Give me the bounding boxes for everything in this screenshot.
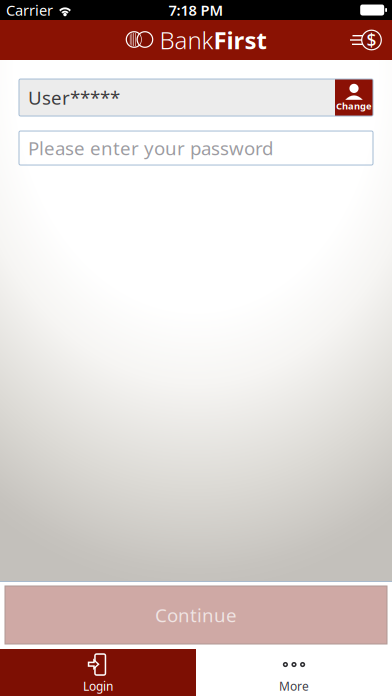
staticText: Carrier	[6, 0, 53, 20]
staticText: User*****	[28, 85, 120, 110]
staticText: Continue	[155, 603, 237, 627]
button[interactable]: Login	[0, 649, 196, 696]
button[interactable]: Quick Pay	[342, 20, 392, 60]
staticText: $	[366, 28, 376, 51]
staticText: 7:18 PM	[168, 0, 223, 20]
button[interactable]: Change	[335, 79, 373, 116]
button[interactable]: Continue	[5, 586, 387, 644]
staticText: Login	[83, 678, 113, 694]
button[interactable]: More	[196, 649, 392, 696]
staticText: First	[213, 24, 266, 56]
staticText: Change	[336, 100, 372, 112]
staticText: Please enter your password	[28, 136, 273, 160]
staticText: More	[279, 678, 309, 694]
staticText: Bank	[159, 24, 213, 56]
